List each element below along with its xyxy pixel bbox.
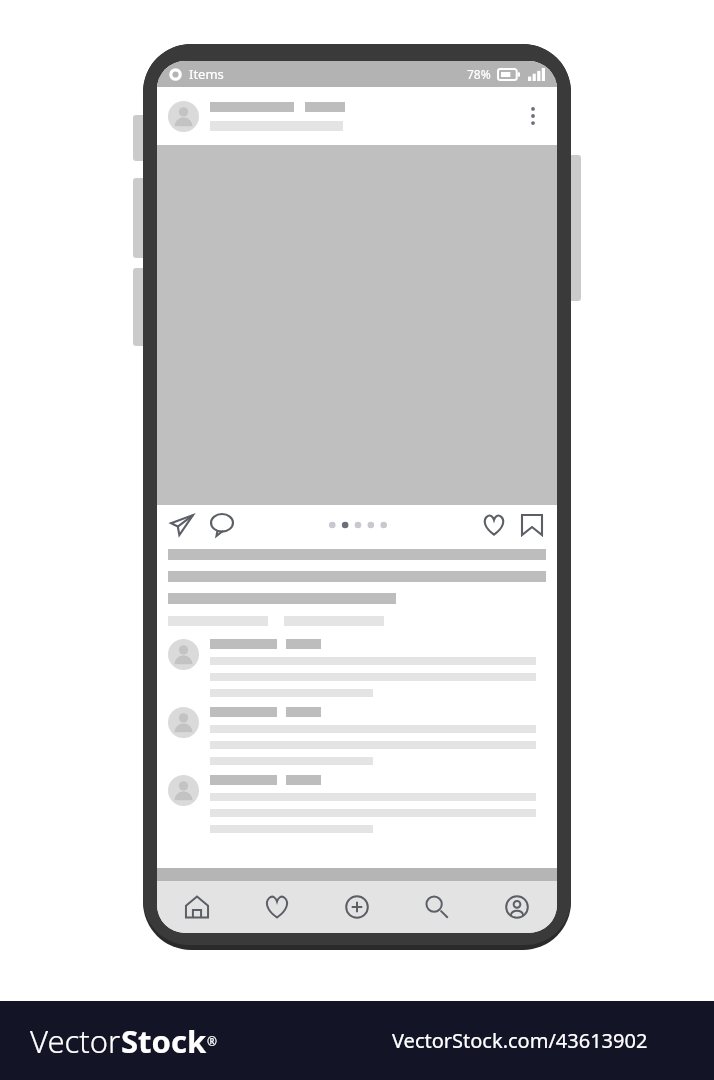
button[interactable]: Create — [317, 881, 397, 933]
staticText: Vector — [30, 1020, 121, 1062]
staticText: VectorStock.com/43613902 — [392, 1027, 648, 1054]
button[interactable]: More options — [520, 103, 546, 129]
staticText: ® — [207, 1033, 217, 1049]
button[interactable]: Save — [519, 512, 545, 538]
button[interactable]: Activity — [237, 881, 317, 933]
button[interactable]: Comment — [209, 512, 235, 538]
staticText: Items — [189, 65, 224, 83]
staticText: 78% — [467, 66, 491, 82]
button[interactable] — [157, 702, 557, 770]
button[interactable]: Like — [481, 512, 507, 538]
button[interactable] — [157, 634, 557, 702]
button[interactable]: More options — [157, 87, 557, 145]
staticText: Stock — [121, 1020, 207, 1062]
button[interactable]: Search — [397, 881, 477, 933]
button[interactable]: Profile — [477, 881, 557, 933]
button[interactable]: Home — [157, 881, 237, 933]
button[interactable]: Share — [169, 512, 195, 538]
button[interactable] — [157, 770, 557, 838]
